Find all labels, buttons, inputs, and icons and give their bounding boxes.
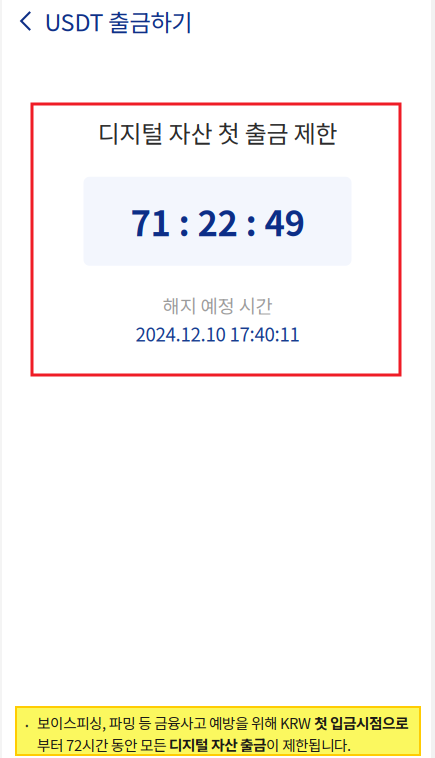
staticText: · [22,712,32,737]
staticText: 부터 72시간 동안 모든 디지털 자산 출금이 제한됩니다. [37,734,351,755]
staticText: USDT 출금하기 [44,4,192,38]
staticText: 해지 예정 시간 [162,292,272,319]
staticText: 보이스피싱, 파밍 등 금융사고 예방을 위해 KRW 첫 입금시점으로 [37,712,408,733]
staticText: 2024.12.10 17:40:11 [135,320,299,347]
staticText: 71 : 22 : 49 [130,196,304,246]
staticText: 디지털 자산 첫 출금 제한 [97,115,337,150]
button[interactable]: USDT 출금하기 — 뒤로 [0,0,208,42]
